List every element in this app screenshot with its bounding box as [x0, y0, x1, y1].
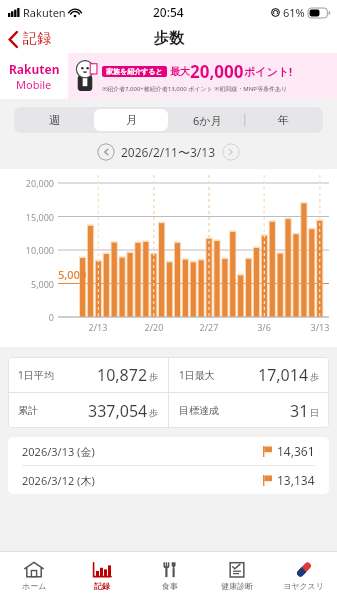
staticText: 2026/3/13 (金) [22, 444, 95, 459]
staticText: 15,000 [0, 211, 54, 223]
staticText: 10,000 [0, 244, 54, 256]
button[interactable]: 健康診断 [203, 552, 270, 600]
staticText: 歩数 [154, 29, 184, 48]
staticText: ポイント! [244, 64, 293, 79]
staticText: 5,000 [58, 267, 87, 282]
button[interactable]: 記録 [68, 552, 136, 600]
button[interactable]: 1日最大 [169, 357, 329, 392]
staticText: 記録 [23, 30, 51, 48]
button[interactable]: ホーム [0, 552, 68, 600]
staticText: 6か月 [193, 113, 222, 128]
button[interactable]: 6か月 [170, 109, 244, 131]
staticText: 0 [0, 311, 54, 323]
button[interactable]: ヨヤクスリ [270, 552, 337, 600]
staticText: ホーム [22, 581, 47, 591]
staticText: 20:54 [153, 4, 184, 20]
staticText: 目標達成 [179, 404, 219, 417]
staticText: 20,000 [0, 177, 54, 189]
button[interactable]: 週 [17, 109, 92, 131]
staticText: Rakuten [23, 5, 66, 20]
staticText: 健康診断 [221, 581, 253, 591]
staticText: 日 [310, 407, 319, 418]
button[interactable]: Rakuten [0, 53, 337, 99]
staticText: 5,000 [0, 278, 54, 290]
staticText: 2/27 [194, 321, 224, 333]
button[interactable]: Previous period [97, 143, 115, 161]
button[interactable]: 記録 [0, 27, 61, 51]
staticText: 17,014 [258, 364, 309, 386]
staticText: 月 [126, 113, 137, 127]
staticText: 歩 [149, 407, 158, 418]
staticText: ※紹介者7,000+被紹介者13,000 ポイント ※初回線・MNP等条件あり [102, 85, 288, 93]
staticText: Rakuten [9, 61, 60, 77]
staticText: 食事 [162, 581, 178, 591]
staticText: 337,054 [88, 400, 148, 422]
staticText: 歩 [149, 371, 158, 382]
staticText: ヨヤクスリ [283, 581, 324, 591]
staticText: 記録 [94, 581, 110, 591]
staticText: 1日平均 [18, 368, 54, 382]
staticText: 2026/2/11〜3/13 [121, 144, 216, 160]
staticText: Mobile [16, 77, 52, 92]
staticText: 2/20 [139, 321, 169, 333]
staticText: 2026/3/12 (木) [22, 473, 95, 488]
staticText: 3/6 [249, 321, 279, 333]
staticText: 3/13 [305, 321, 335, 333]
staticText: 週 [49, 113, 60, 127]
staticText: 累計 [18, 404, 38, 417]
staticText: 1日最大 [179, 368, 215, 382]
button[interactable]: Next period [222, 143, 240, 161]
button[interactable]: 月 [94, 109, 168, 131]
staticText: 20,000 [190, 60, 244, 83]
button[interactable]: 2026/3/13 (金) [8, 437, 329, 465]
staticText: 61% [283, 5, 305, 20]
staticText: 31 [290, 400, 309, 422]
button[interactable]: 目標達成 [169, 393, 329, 428]
staticText: 10,872 [97, 364, 148, 386]
button[interactable]: 年 [246, 109, 320, 131]
staticText: 2/13 [83, 321, 113, 333]
staticText: 最大 [170, 65, 190, 78]
staticText: 家族を紹介すると [106, 67, 163, 76]
staticText: 年 [278, 113, 289, 127]
staticText: 13,134 [277, 472, 315, 488]
button[interactable]: 2026/3/12 (木) [8, 466, 329, 494]
button[interactable]: 累計 [8, 393, 168, 428]
button[interactable]: 1日平均 [8, 357, 168, 392]
staticText: 14,361 [277, 443, 315, 459]
staticText: 歩 [310, 371, 319, 382]
button[interactable]: 食事 [136, 552, 203, 600]
